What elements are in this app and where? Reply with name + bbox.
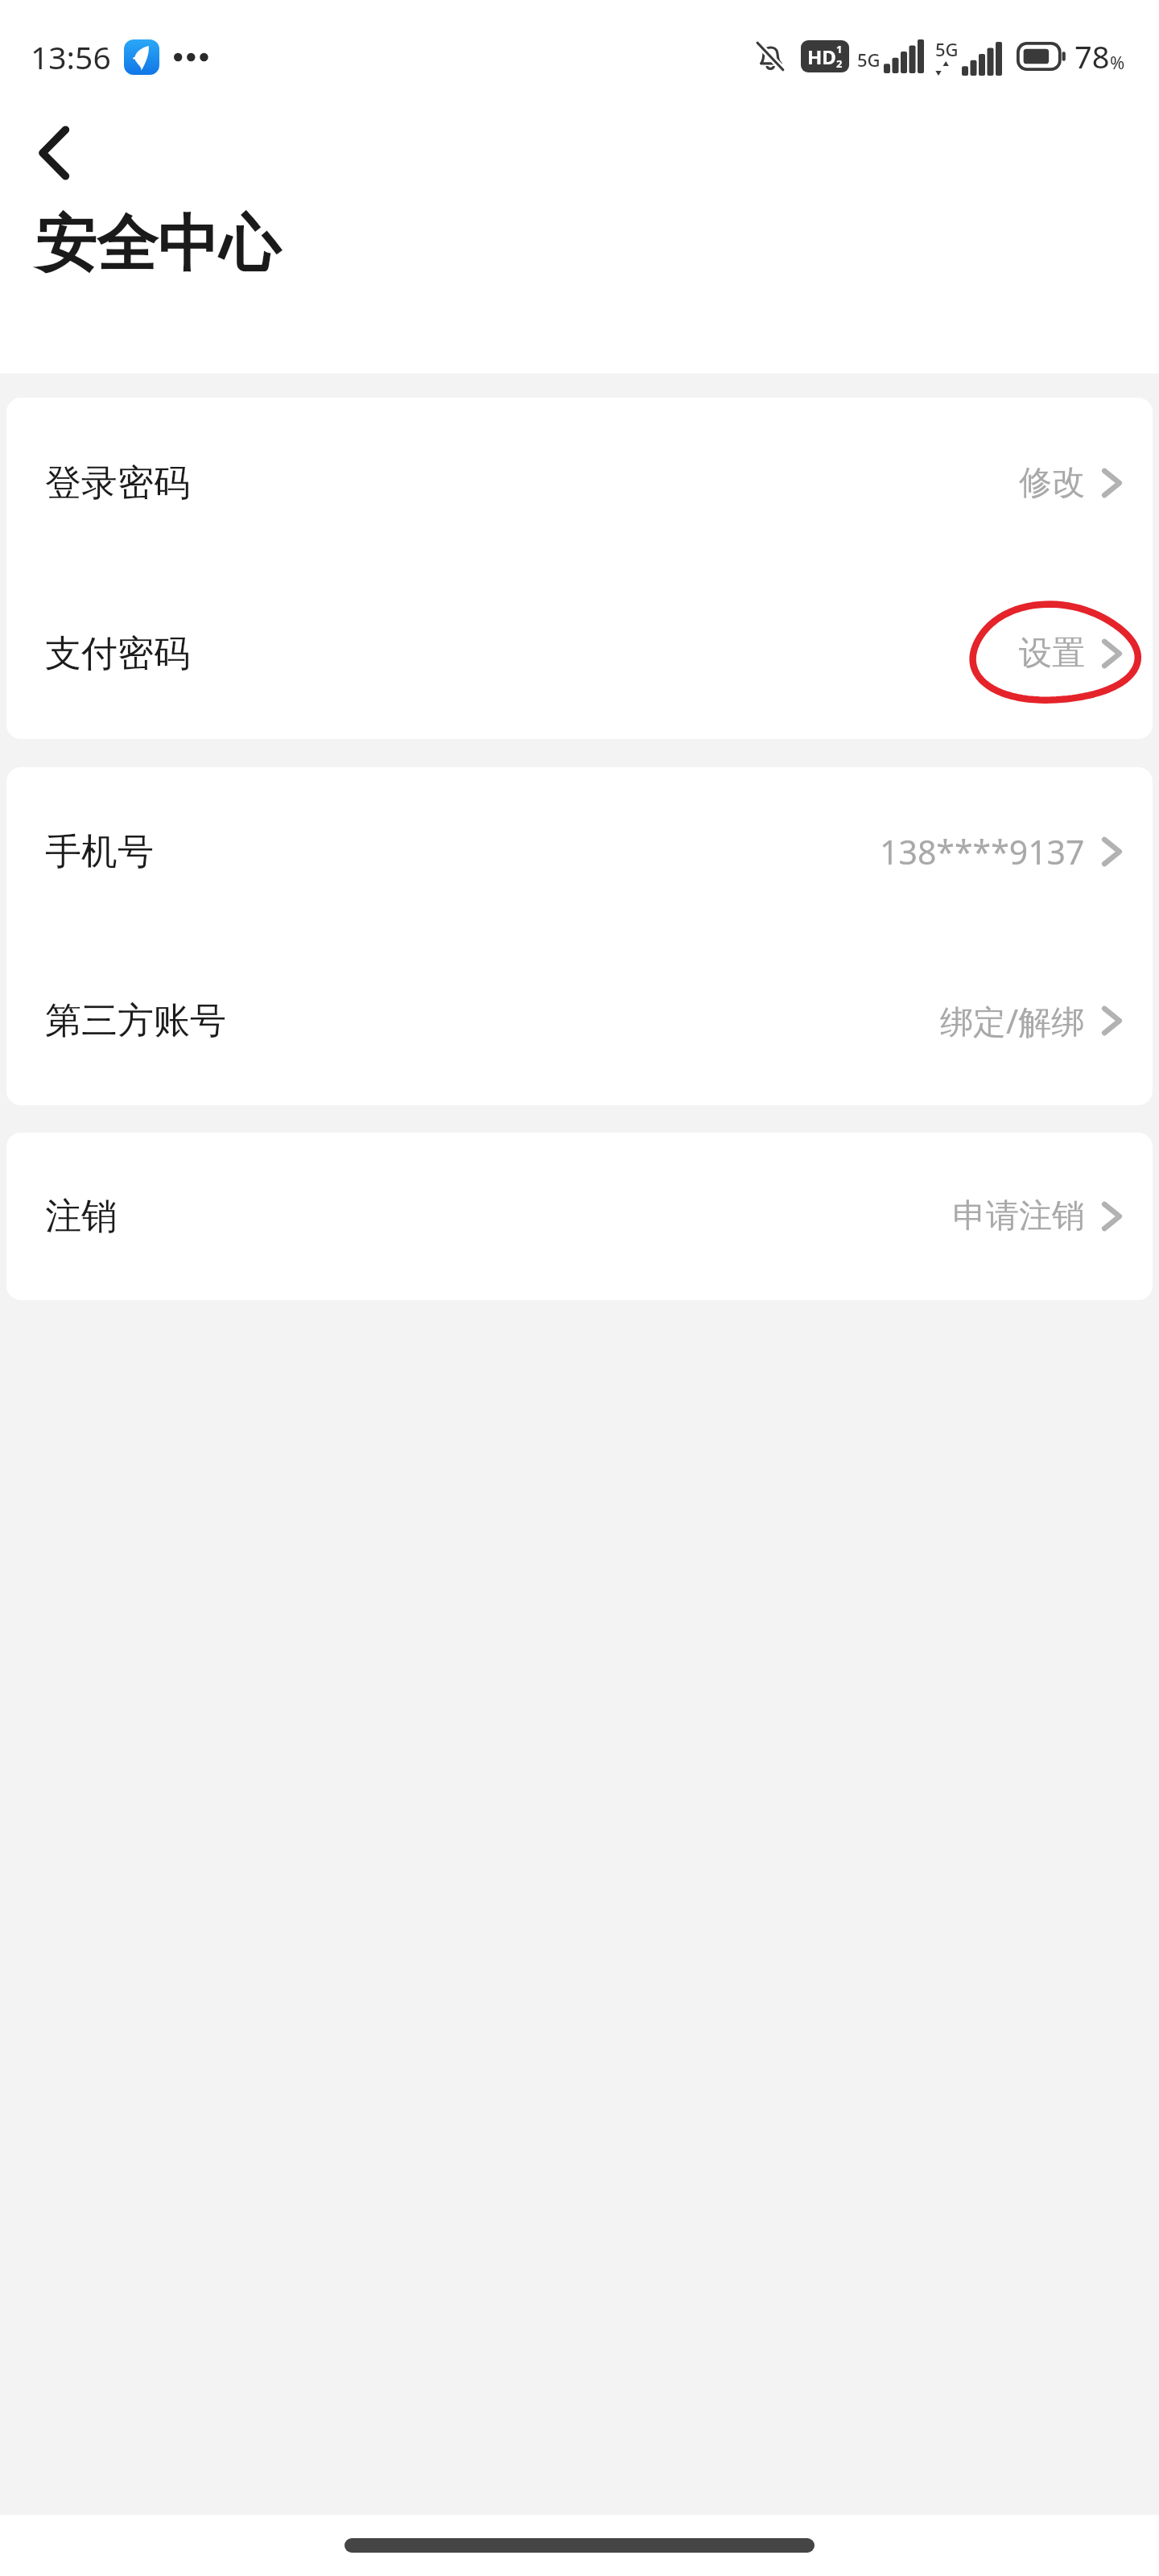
staticText: 申请注销 [953,1195,1085,1237]
staticText: 支付密码 [45,631,190,677]
staticText: HD [807,43,836,70]
staticText: 绑定/解绑 [940,998,1085,1043]
staticText: % [1110,50,1125,74]
staticText: 5G [857,47,881,72]
staticText: 手机号 [45,829,154,875]
staticText: 5G [935,37,959,61]
staticText: 第三方账号 [45,998,226,1044]
staticText: 78 [1074,35,1110,77]
staticText: 138****9137 [880,829,1085,874]
button[interactable]: 第三方账号 [6,936,1153,1105]
button[interactable]: 登录密码 [6,398,1153,568]
staticText: 1 [836,42,843,56]
button[interactable]: 注销 [6,1133,1153,1300]
staticText: 登录密码 [45,460,190,506]
staticText: 注销 [45,1194,118,1240]
staticText: 设置 [1019,633,1085,675]
staticText: 13:56 [31,35,111,78]
button[interactable]: Back [14,113,95,193]
staticText: 修改 [1019,462,1085,504]
staticText: 2 [836,56,843,71]
staticText: 安全中心 [35,206,280,283]
button[interactable]: 支付密码 [6,568,1153,739]
button[interactable]: 手机号 [6,767,1153,936]
